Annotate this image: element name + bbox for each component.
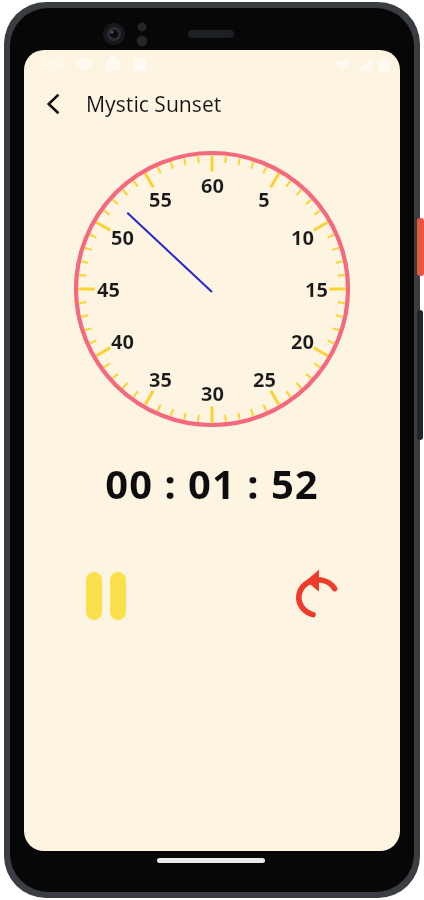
staticText: 10 <box>291 224 314 251</box>
staticText: 40 <box>111 328 134 355</box>
staticText: 45 <box>97 276 120 303</box>
staticText: 15 <box>305 276 328 303</box>
staticText: 2:32 <box>39 54 65 72</box>
button[interactable]: Restart <box>282 560 354 632</box>
staticText: 35 <box>149 366 172 393</box>
staticText: 50 <box>111 224 134 251</box>
staticText: 20 <box>291 328 314 355</box>
staticText: 55 <box>149 186 172 213</box>
button[interactable]: Pause <box>70 560 142 632</box>
staticText: 5 <box>258 186 270 213</box>
button[interactable]: Back <box>32 82 76 126</box>
staticText: 00 : 01 : 52 <box>24 456 400 510</box>
staticText: Mystic Sunset <box>86 90 222 119</box>
staticText: 30 <box>201 380 224 407</box>
staticText: 25 <box>253 366 276 393</box>
staticText: 60 <box>201 172 224 199</box>
